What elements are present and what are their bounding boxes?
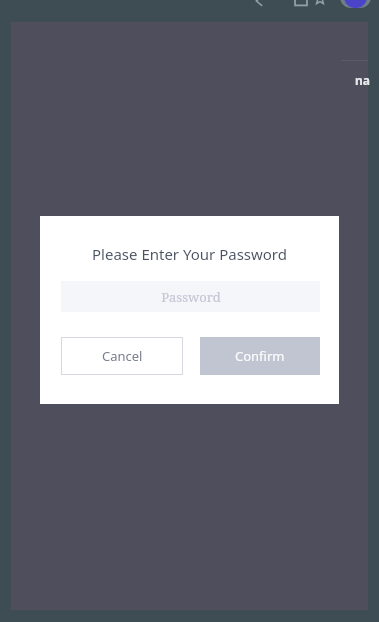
staticText: Cancel — [102, 347, 143, 365]
button[interactable]: Back — [246, 0, 272, 12]
button[interactable]: Tabs — [288, 0, 314, 12]
staticText: na — [355, 72, 370, 88]
staticText: Please Enter Your Password — [40, 244, 339, 264]
button[interactable]: Bookmark — [307, 0, 333, 10]
button[interactable]: Account — [340, 0, 371, 8]
staticText: Confirm — [235, 347, 285, 365]
button[interactable]: Confirm — [200, 337, 320, 375]
button[interactable]: Password — [61, 281, 320, 312]
button[interactable]: Cancel — [61, 337, 183, 375]
staticText: Password — [161, 288, 221, 306]
